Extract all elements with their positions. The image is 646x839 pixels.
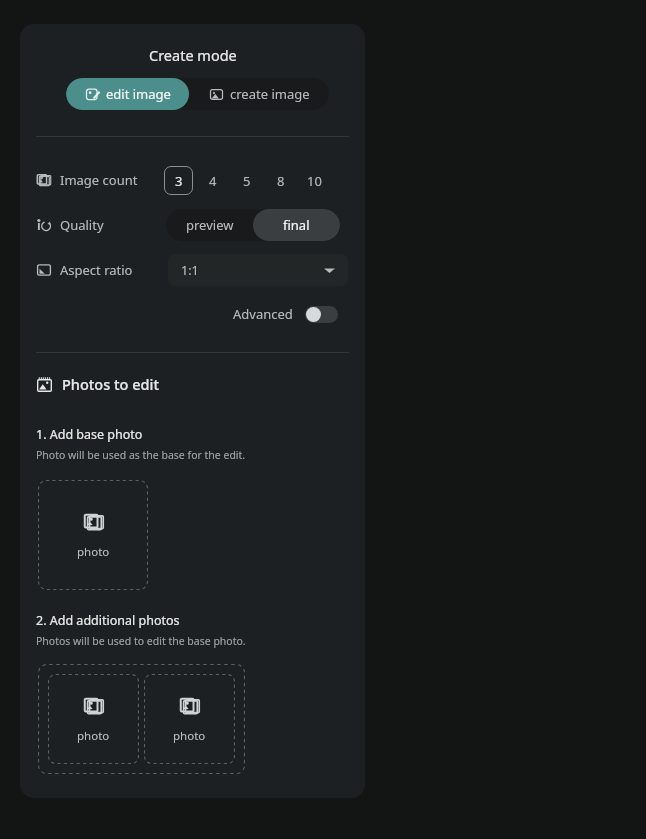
staticText: final bbox=[283, 216, 310, 234]
button[interactable]: 3 bbox=[164, 166, 193, 195]
staticText: photo bbox=[77, 544, 110, 560]
staticText: 1. Add base photo bbox=[36, 426, 143, 443]
button[interactable]: edit image bbox=[66, 78, 189, 110]
staticText: photo bbox=[173, 728, 206, 744]
staticText: Photo will be used as the base for the e… bbox=[36, 448, 246, 462]
staticText: preview bbox=[186, 216, 234, 234]
staticText: 2. Add additional photos bbox=[36, 612, 180, 629]
button[interactable]: Add photo bbox=[38, 480, 148, 590]
staticText: 8 bbox=[277, 172, 285, 190]
button[interactable]: Advanced bbox=[229, 301, 342, 327]
button[interactable]: create image bbox=[189, 78, 329, 110]
button[interactable]: final bbox=[253, 209, 340, 241]
staticText: Advanced bbox=[233, 305, 293, 323]
button[interactable]: preview bbox=[166, 209, 253, 241]
staticText: 4 bbox=[209, 172, 217, 190]
staticText: edit image bbox=[106, 85, 171, 103]
staticText: Image count bbox=[60, 171, 138, 189]
button[interactable]: 8 bbox=[266, 166, 295, 195]
staticText: Photos will be used to edit the base pho… bbox=[36, 634, 246, 648]
button[interactable]: 1:1 bbox=[168, 254, 348, 286]
staticText: 10 bbox=[307, 172, 322, 190]
staticText: create image bbox=[230, 85, 310, 103]
button[interactable]: Add photo bbox=[144, 674, 235, 764]
button[interactable]: 10 bbox=[300, 166, 329, 195]
staticText: 3 bbox=[175, 172, 183, 190]
button[interactable]: 5 bbox=[232, 166, 261, 195]
staticText: Create mode bbox=[149, 45, 237, 65]
staticText: 1:1 bbox=[181, 262, 199, 279]
staticText: Quality bbox=[60, 216, 104, 234]
staticText: photo bbox=[77, 728, 110, 744]
staticText: Aspect ratio bbox=[60, 261, 133, 279]
button[interactable]: 4 bbox=[198, 166, 227, 195]
staticText: 5 bbox=[243, 172, 251, 190]
staticText: Photos to edit bbox=[62, 374, 159, 394]
button[interactable]: Add photo bbox=[48, 674, 139, 764]
